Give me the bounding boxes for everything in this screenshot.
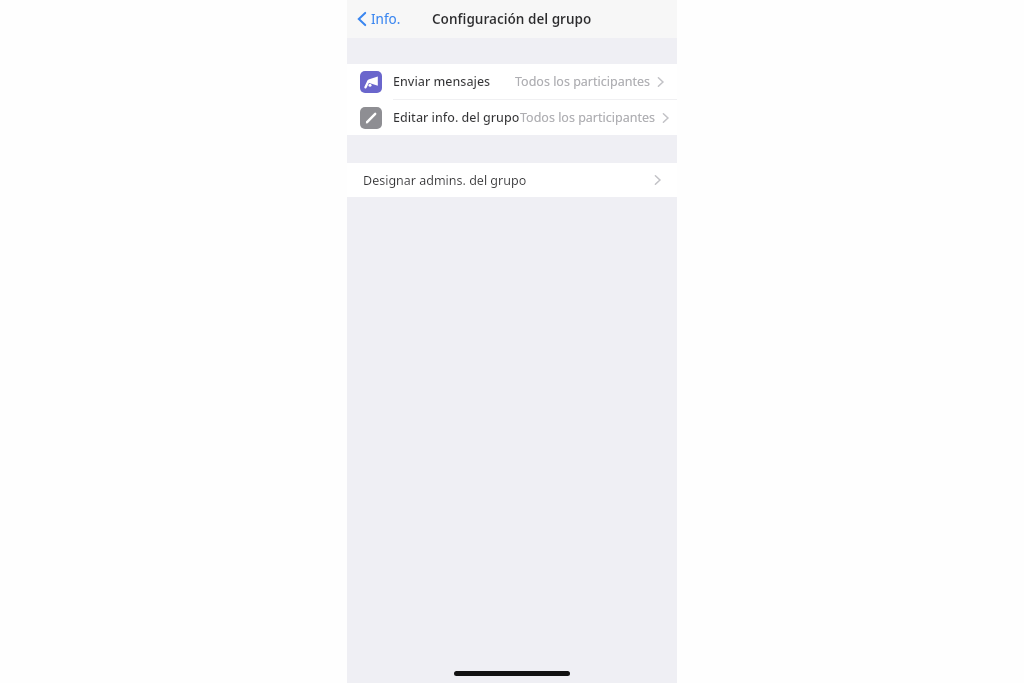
staticText: Editar info. del grupo [393, 109, 520, 126]
other: Abrir [657, 76, 664, 88]
button[interactable]: Designar admins. del grupo [347, 163, 677, 197]
staticText: Info. [371, 10, 401, 28]
button[interactable]: Info. [353, 6, 405, 32]
staticText: Todos los participantes [520, 109, 655, 126]
staticText: Designar admins. del grupo [363, 172, 527, 189]
other: Abrir [654, 174, 661, 186]
staticText: Configuración del grupo [432, 10, 592, 28]
staticText: Enviar mensajes [393, 73, 491, 90]
button[interactable]: Enviar mensajes [347, 64, 677, 99]
button[interactable]: Editar info. del grupo [347, 100, 677, 135]
other: Abrir [662, 112, 669, 124]
staticText: Todos los participantes [515, 73, 650, 90]
